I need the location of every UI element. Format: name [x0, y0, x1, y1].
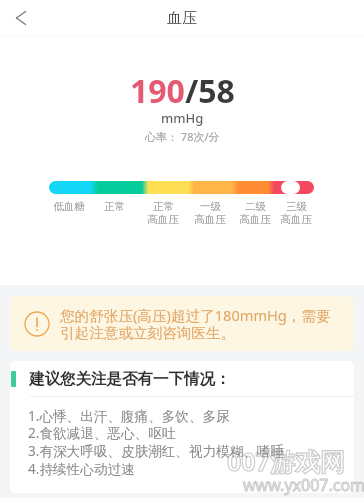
staticText: 高血压 — [280, 213, 312, 226]
button[interactable]: 您的舒张压(高压)超过了180mmHg，需要 引起注意或立刻咨询医生。 — [10, 296, 354, 351]
staticText: 建议您关注是否有一下情况： — [29, 369, 231, 389]
staticText: mmHg — [161, 109, 204, 127]
button[interactable]: Back — [7, 4, 35, 32]
staticText: 一级 — [200, 200, 221, 213]
staticText: 高血压 — [239, 213, 271, 226]
staticText: www.yx007.com — [243, 474, 364, 496]
staticText: 心率： 78次/分 — [145, 129, 220, 144]
staticText: 二级 — [245, 200, 266, 213]
staticText: 血压 — [167, 9, 197, 28]
staticText: 高血压 — [194, 213, 226, 226]
staticText: 三级 — [286, 200, 307, 213]
staticText: 007游戏网 — [227, 444, 345, 478]
staticText: 1.心悸、出汗、腹痛、多饮、多尿 2.食欲减退、恶心、呕吐 3.有深大呼吸、皮肤… — [28, 406, 285, 478]
staticText: 正常 — [153, 200, 174, 213]
staticText: 低血糖 — [53, 200, 85, 213]
staticText: 正常 — [104, 200, 125, 213]
staticText: 您的舒张压(高压)超过了180mmHg，需要 引起注意或立刻咨询医生。 — [60, 305, 331, 342]
staticText: 190/58 — [130, 69, 235, 113]
staticText: 高血压 — [147, 213, 179, 226]
